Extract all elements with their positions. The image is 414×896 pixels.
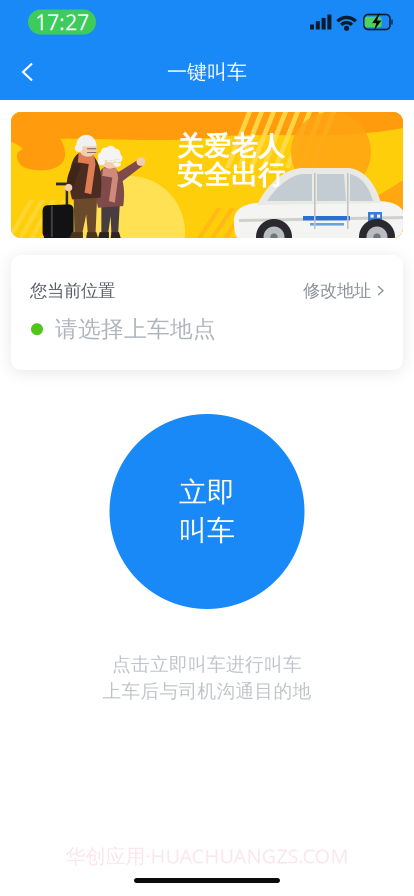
button[interactable]: 修改地址 (303, 280, 384, 301)
staticText: 上车后与司机沟通目的地 (102, 680, 311, 703)
staticText: 一键叫车 (167, 60, 247, 84)
staticText: 点击立即叫车进行叫车 (112, 653, 302, 676)
staticText: 请选择上车地点 (55, 315, 216, 343)
staticText: 安全出行 (177, 159, 285, 192)
staticText: 叫车 (179, 513, 235, 548)
staticText: 关爱老人 (177, 130, 285, 163)
staticText: 修改地址 (303, 280, 371, 301)
staticText: 17:27 (35, 8, 89, 36)
staticText: 您当前位置 (30, 280, 115, 301)
staticText: 立即 (179, 475, 235, 509)
button[interactable]: 返回 (0, 49, 48, 95)
staticText: 华创应用·HUACHUANGZS.COM (65, 842, 348, 869)
button[interactable]: 立即 (109, 414, 304, 609)
